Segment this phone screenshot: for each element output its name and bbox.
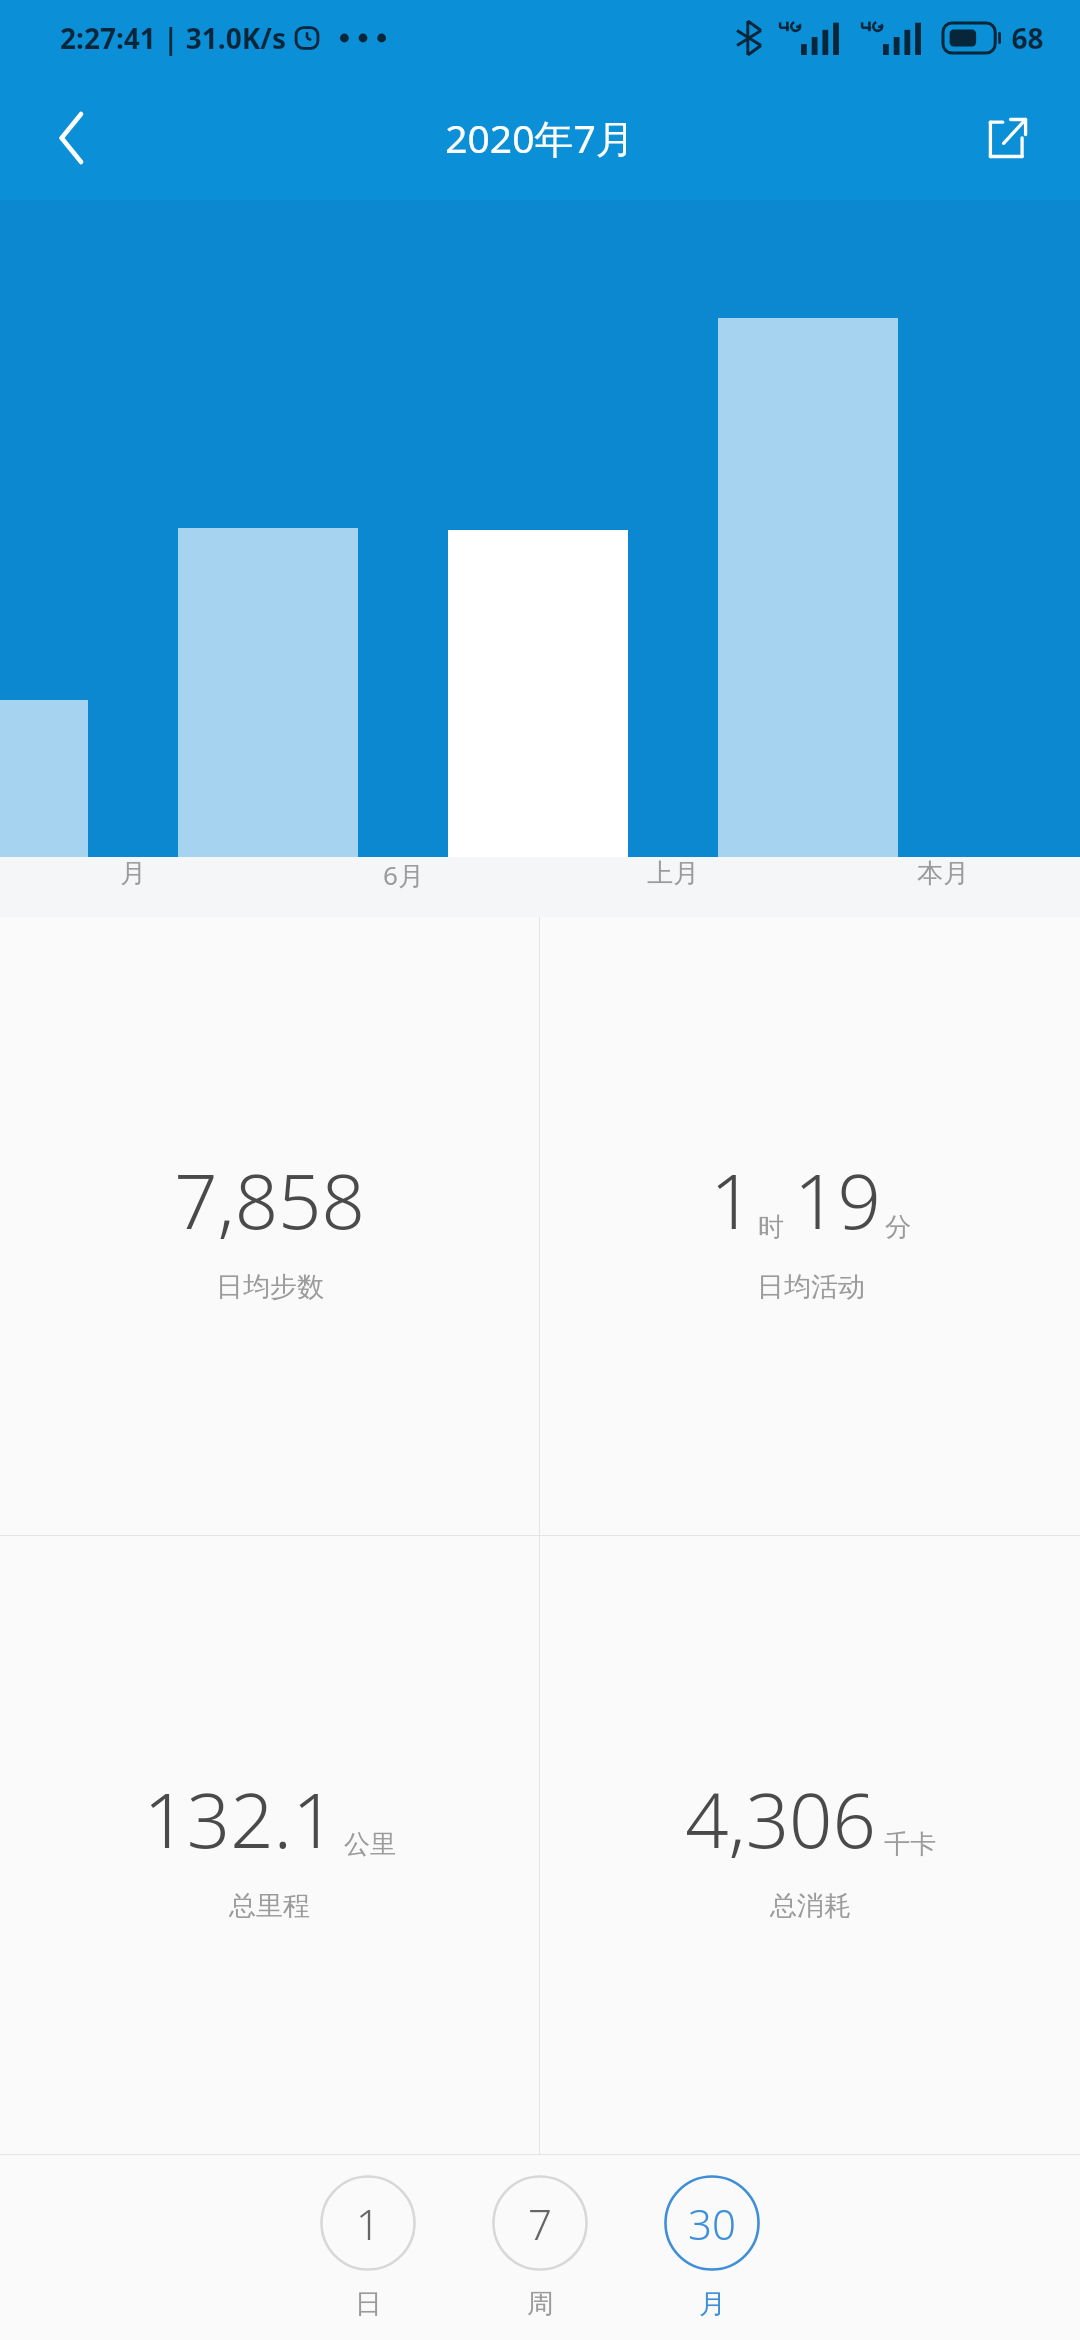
staticText: 本月 [917,857,969,890]
button[interactable]: Back [24,90,120,186]
staticText: 30 [688,2195,736,2252]
staticText: 分 [885,1211,911,1244]
staticText: 千卡 [884,1828,936,1861]
staticText: 上月 [647,857,699,890]
staticText: 19 [794,1148,881,1252]
staticText: 时 [758,1211,784,1244]
staticText: 2:27:41 | 31.0K/s [60,19,286,57]
staticText: 总消耗 [770,1889,851,1923]
staticText: 2020年7月 [445,111,635,164]
staticText: 月 [699,2287,726,2321]
staticText: 68 [1011,19,1044,57]
staticText: 1 [356,2195,380,2252]
button[interactable]: 132.1 [0,1536,539,2154]
staticText: 132.1 [143,1767,336,1871]
staticText: 总里程 [229,1889,310,1923]
staticText: 周 [527,2287,554,2321]
staticText: 公里 [344,1828,396,1861]
button[interactable]: 30 [654,2175,770,2321]
staticText: 7,858 [174,1148,365,1252]
staticText: 1 [710,1148,754,1252]
staticText: 日均步数 [216,1270,324,1304]
button[interactable]: 1 [310,2175,426,2321]
staticText: 6月 [383,857,424,893]
staticText: 4,306 [685,1767,876,1871]
button[interactable]: 1 [540,917,1080,1535]
button[interactable]: 7,858 [0,917,539,1535]
staticText: 日 [355,2287,382,2321]
button[interactable]: Share [960,90,1056,186]
button[interactable]: 4,306 [540,1536,1080,2154]
staticText: 7 [528,2195,552,2252]
button[interactable]: 7 [482,2175,598,2321]
staticText: 月 [120,857,146,890]
staticText: 日均活动 [757,1270,865,1304]
